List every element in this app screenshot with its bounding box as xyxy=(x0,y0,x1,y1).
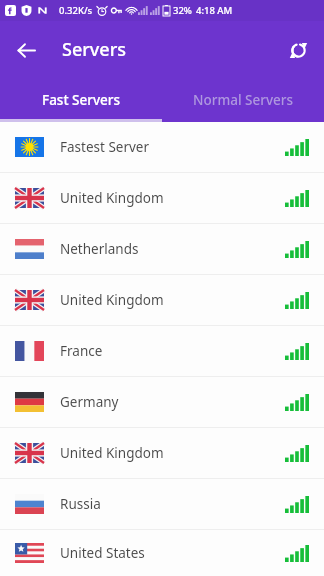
staticText: 4:18 AM xyxy=(196,4,233,17)
button[interactable]: Fast Servers xyxy=(0,78,162,122)
button[interactable]: Netherlands xyxy=(0,224,324,274)
button[interactable]: France xyxy=(0,326,324,376)
button[interactable]: Germany xyxy=(0,377,324,427)
staticText: Servers xyxy=(62,37,127,62)
staticText: Russia xyxy=(60,495,285,513)
staticText: 32% xyxy=(173,4,192,17)
button[interactable]: Fastest Server xyxy=(0,122,324,172)
button[interactable]: United Kingdom xyxy=(0,173,324,223)
button[interactable]: Russia xyxy=(0,479,324,529)
staticText: Normal Servers xyxy=(193,91,294,109)
button[interactable]: Back xyxy=(6,30,46,70)
staticText: Fast Servers xyxy=(42,91,121,109)
button[interactable]: United States xyxy=(0,530,324,576)
staticText: Netherlands xyxy=(60,240,285,258)
button[interactable]: Normal Servers xyxy=(162,78,324,122)
staticText: United Kingdom xyxy=(60,189,285,207)
button[interactable]: United Kingdom xyxy=(0,428,324,478)
staticText: Germany xyxy=(60,393,285,411)
button[interactable]: Refresh xyxy=(278,30,318,70)
staticText: Fastest Server xyxy=(60,138,285,156)
staticText: United Kingdom xyxy=(60,444,285,462)
staticText: United Kingdom xyxy=(60,291,285,309)
staticText: France xyxy=(60,342,285,360)
staticText: 0.32K/s xyxy=(59,4,93,17)
button[interactable]: United Kingdom xyxy=(0,275,324,325)
staticText: United States xyxy=(60,544,285,562)
